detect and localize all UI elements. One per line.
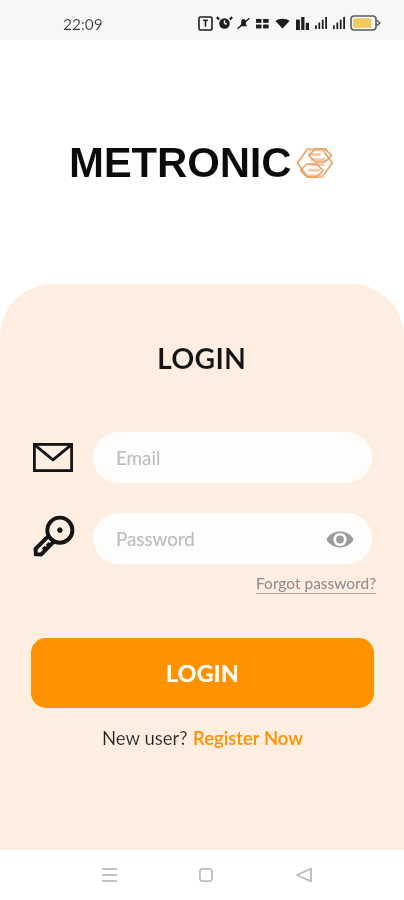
button[interactable]: LOGIN <box>31 638 374 708</box>
button[interactable]: Forgot password? <box>256 574 377 593</box>
staticText: Password <box>116 527 195 550</box>
button[interactable]: Show password <box>323 522 357 556</box>
staticText: New user? <box>102 727 193 749</box>
staticText: 22:09 <box>63 15 103 34</box>
button[interactable]: Register Now <box>193 727 303 749</box>
button[interactable]: Email <box>93 432 372 483</box>
button[interactable]: Password <box>93 513 372 564</box>
button[interactable]: Home <box>182 856 229 894</box>
staticText: LOGIN <box>166 659 240 687</box>
staticText: LOGIN <box>157 341 247 375</box>
staticText: Email <box>116 446 161 469</box>
button[interactable]: Back <box>280 856 327 894</box>
staticText: METRONIC <box>69 139 292 186</box>
button[interactable]: Recent apps <box>86 856 133 894</box>
